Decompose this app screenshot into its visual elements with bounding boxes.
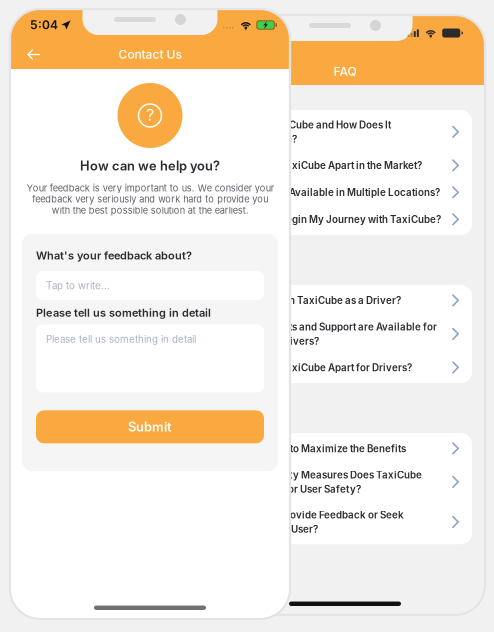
staticText: Contact Us xyxy=(118,47,181,62)
staticText: Please tell us something in detail xyxy=(46,333,196,345)
staticText: Tap to write... xyxy=(46,280,110,291)
staticText: What Benefits and Support are Available … xyxy=(231,321,437,333)
staticText: TaxiCube Drivers? xyxy=(231,335,319,347)
staticText: How Do I Join TaxiCube as a Driver? xyxy=(231,295,401,306)
button[interactable]: What Sets TaxiCube Apart in the Market? xyxy=(218,152,472,179)
button[interactable]: Submit xyxy=(36,410,264,443)
button[interactable]: How Can I Provide Feedback or Seek xyxy=(218,502,472,542)
button[interactable]: What Sets TaxiCube Apart for Drivers? xyxy=(218,354,472,381)
button[interactable]: How Do I Join TaxiCube as a Driver? xyxy=(218,287,472,314)
staticText: FAQ xyxy=(333,64,356,78)
staticText: Please tell us something in detail xyxy=(36,306,211,319)
button[interactable]: What is TaxiCube and How Does It xyxy=(218,112,472,152)
button[interactable]: How Can I Begin My Journey with TaxiCube… xyxy=(218,206,472,233)
staticText: .... xyxy=(222,19,234,31)
button[interactable]: Tap to write... xyxy=(36,271,264,300)
button[interactable]: Back xyxy=(18,40,49,68)
staticText: Tips on How to Maximize the Benefits xyxy=(231,443,406,454)
staticText: Implement for User Safety? xyxy=(231,483,361,495)
button[interactable]: Please tell us something in detail xyxy=(36,324,264,392)
staticText: How can we help you? xyxy=(80,158,220,173)
staticText: Is TaxiCube Available in Multiple Locati… xyxy=(231,187,440,198)
button[interactable]: Tips on How to Maximize the Benefits xyxy=(218,435,472,462)
button[interactable]: What Benefits and Support are Available … xyxy=(218,314,472,354)
staticText: How Can I Provide Feedback or Seek xyxy=(231,509,404,521)
staticText: What's your feedback about? xyxy=(36,249,192,262)
staticText: Support as a User? xyxy=(231,523,318,535)
staticText: Submit xyxy=(128,419,172,435)
staticText: What Security Measures Does TaxiCube xyxy=(231,469,422,481)
staticText: Simplify Life? xyxy=(231,133,297,145)
staticText: Your feedback is very important to us. W… xyxy=(26,182,273,216)
staticText: ? xyxy=(146,105,154,125)
staticText: What Sets TaxiCube Apart in the Market? xyxy=(231,160,422,171)
button[interactable]: What Security Measures Does TaxiCube xyxy=(218,462,472,502)
staticText: How Can I Begin My Journey with TaxiCube… xyxy=(231,214,441,225)
staticText: What Sets TaxiCube Apart for Drivers? xyxy=(231,362,412,373)
staticText: What is TaxiCube and How Does It xyxy=(231,119,391,131)
button[interactable]: Is TaxiCube Available in Multiple Locati… xyxy=(218,179,472,206)
staticText: 5:04 xyxy=(30,18,58,32)
